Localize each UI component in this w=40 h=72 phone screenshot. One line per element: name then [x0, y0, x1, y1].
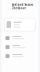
staticText: Checkout	[11, 6, 25, 10]
button[interactable]	[4, 18, 35, 31]
button[interactable]	[5, 36, 38, 40]
button[interactable]	[5, 45, 38, 49]
staticText: Fast and Secure	[11, 3, 33, 6]
button[interactable]	[5, 54, 38, 58]
